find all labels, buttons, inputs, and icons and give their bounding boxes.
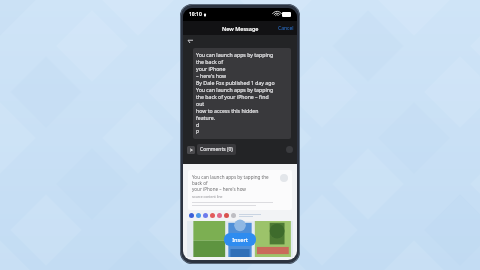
staticText: the back of xyxy=(196,58,223,65)
button[interactable]: Share target xyxy=(203,213,208,218)
button[interactable]: Share target xyxy=(210,213,215,218)
button[interactable]: Share target xyxy=(231,213,236,218)
staticText: – here's how xyxy=(196,72,227,79)
staticText: You can launch apps by tapping xyxy=(196,86,274,93)
staticText: P xyxy=(196,128,200,135)
staticText: New Message xyxy=(222,25,259,32)
button[interactable]: Share target xyxy=(189,213,194,218)
button[interactable]: Comments (0) xyxy=(197,144,236,155)
staticText: Cancel xyxy=(278,25,294,32)
staticText: the back of your iPhone – find xyxy=(196,93,269,100)
button[interactable]: You can launch apps by tapping xyxy=(193,48,291,139)
staticText: Insert xyxy=(232,236,248,243)
staticText: your iPhone – here's how xyxy=(192,186,246,192)
staticText: > xyxy=(190,147,193,153)
button[interactable]: More xyxy=(286,146,293,153)
staticText: out xyxy=(196,100,205,107)
staticText: You can launch apps by tapping the back … xyxy=(192,174,277,186)
staticText: source content line xyxy=(192,194,223,199)
staticText: feature. xyxy=(196,114,216,121)
staticText: By Dale Fox published 1 day ago xyxy=(196,79,275,86)
button[interactable]: Expand xyxy=(187,146,195,154)
button[interactable]: You can launch apps by tapping the back … xyxy=(188,170,292,210)
staticText: Comments (0) xyxy=(200,146,233,153)
button[interactable]: Share target xyxy=(196,213,201,218)
button[interactable]: Insert xyxy=(224,233,256,246)
button[interactable]: Share target xyxy=(224,213,229,218)
staticText: 10:10 xyxy=(189,11,202,18)
button[interactable]: Cancel xyxy=(275,23,297,34)
staticText: d xyxy=(196,121,200,128)
staticText: your iPhone xyxy=(196,65,226,72)
button[interactable]: Share target xyxy=(217,213,222,218)
staticText: You can launch apps by tapping xyxy=(196,51,274,58)
staticText: how to access this hidden xyxy=(196,107,259,114)
